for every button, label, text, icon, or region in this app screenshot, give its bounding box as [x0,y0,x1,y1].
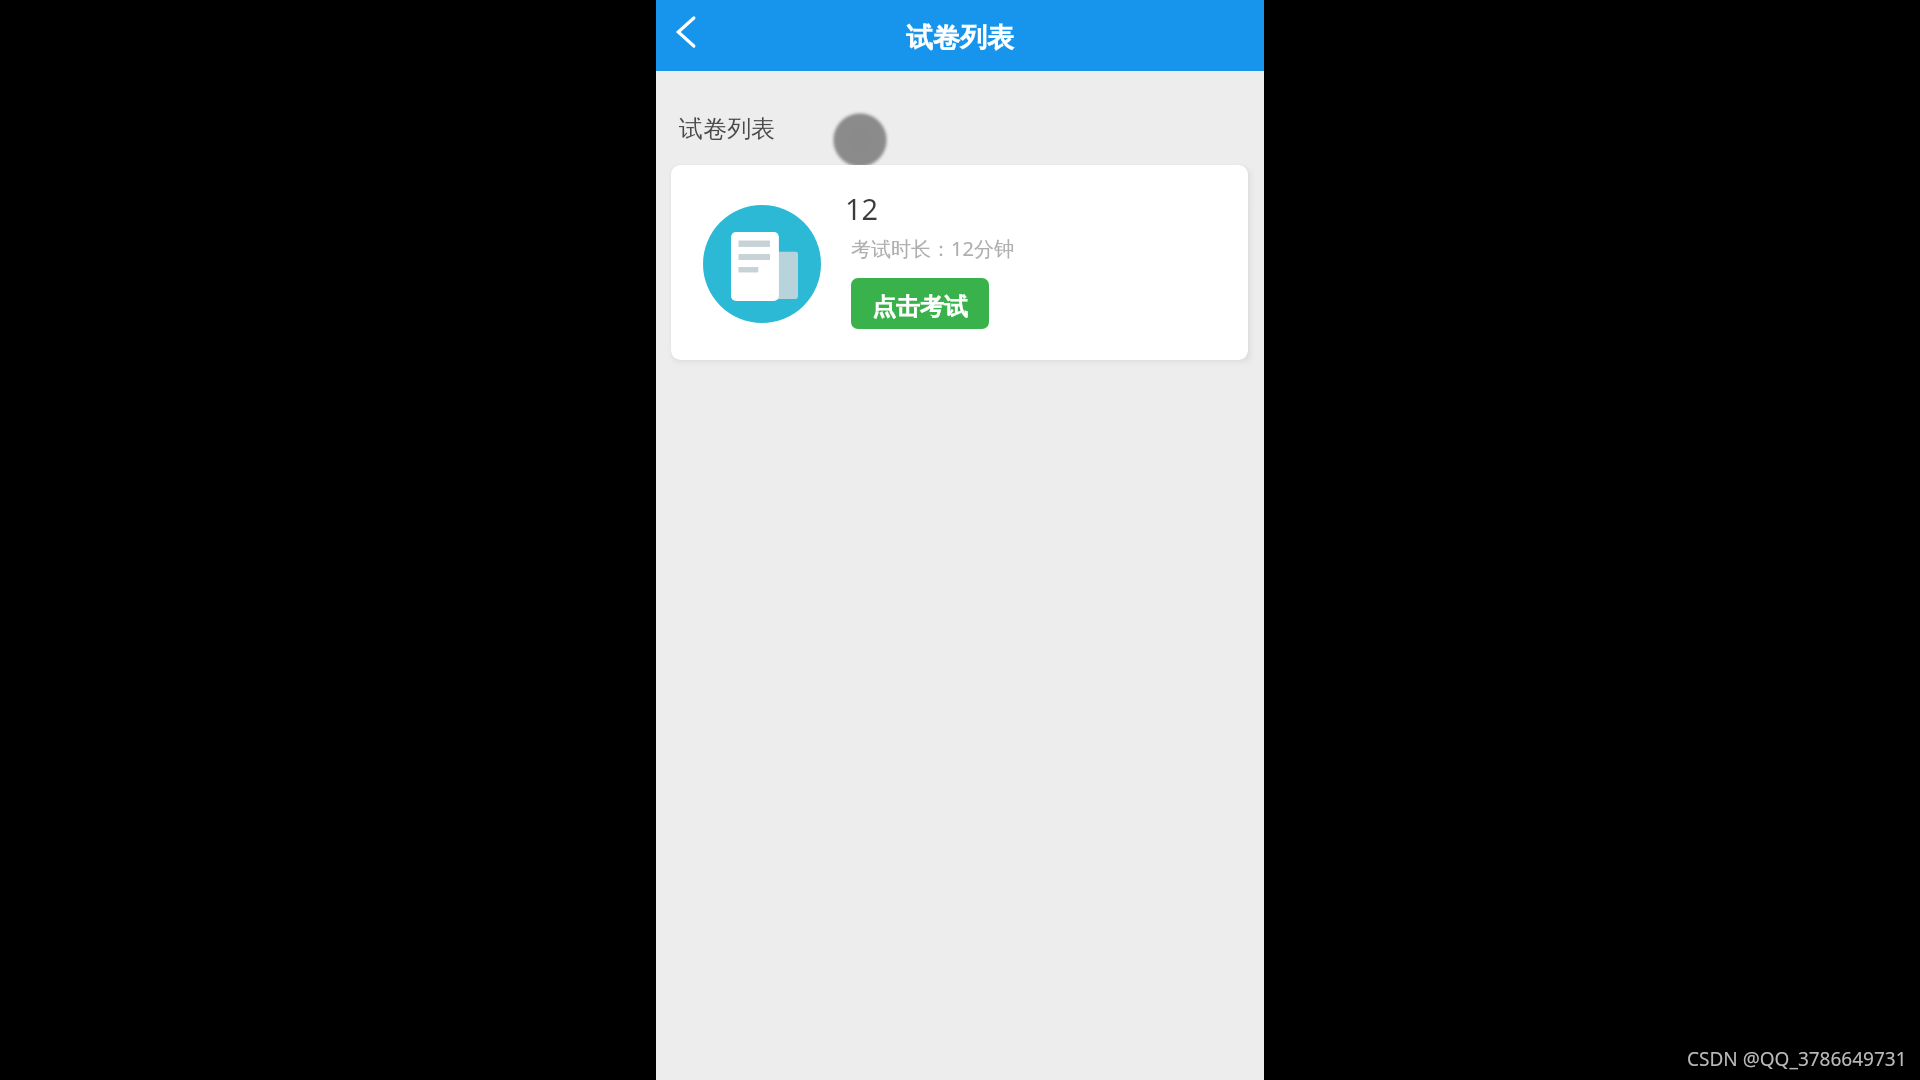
staticText: CSDN @QQ_3786649731 [1687,1046,1907,1072]
staticText: 12 [845,189,879,228]
button[interactable]: 12 [671,165,1248,360]
staticText: 试卷列表 [906,21,1014,55]
button[interactable]: 点击考试 [851,278,989,329]
button[interactable]: Back [655,0,719,64]
staticText: 考试时长：12分钟 [851,235,1014,262]
staticText: 试卷列表 [679,114,775,144]
staticText: 点击考试 [872,292,968,322]
